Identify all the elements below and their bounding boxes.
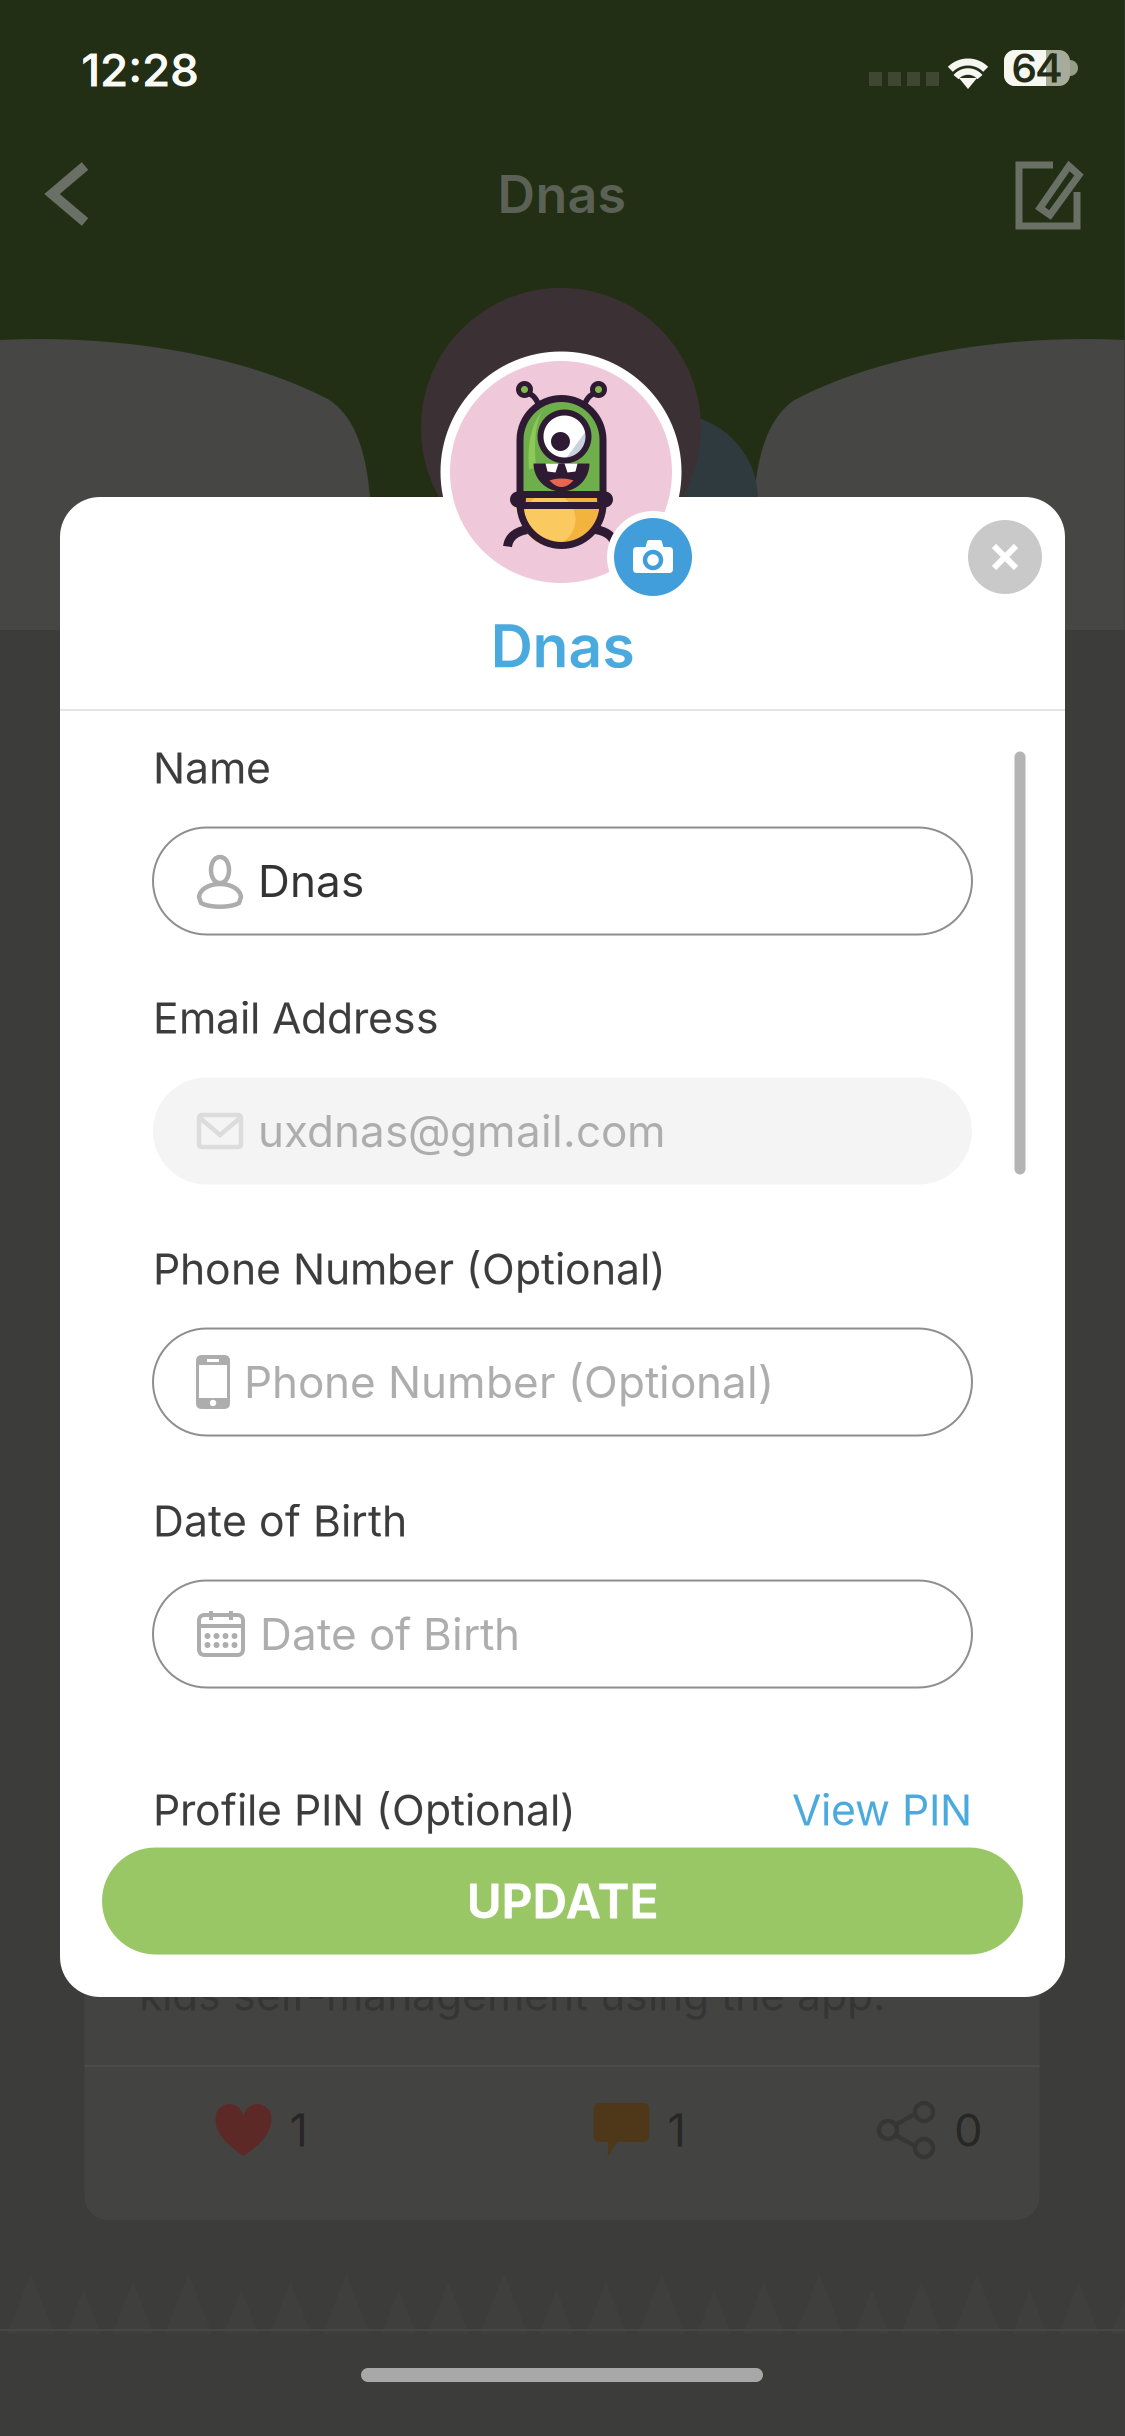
button[interactable]: UPDATE: [102, 1847, 1023, 1954]
staticText: Date of Birth: [153, 1495, 407, 1547]
button[interactable]: Edit: [1015, 160, 1081, 230]
staticText: Date of Birth: [260, 1607, 520, 1661]
staticText: Email Address: [153, 992, 439, 1044]
button[interactable]: 0: [874, 2085, 984, 2175]
staticText: 1: [667, 2103, 685, 2157]
staticText: UPDATE: [466, 1872, 658, 1930]
button[interactable]: View PIN: [792, 1784, 972, 1836]
staticText: kids self-management using the app.: [139, 1969, 885, 2021]
staticText: Profile PIN (Optional): [153, 1784, 576, 1836]
staticText: View PIN: [792, 1784, 972, 1836]
button[interactable]: 1: [208, 2085, 314, 2175]
button[interactable]: Back: [26, 149, 116, 239]
staticText: Dnas: [258, 854, 364, 908]
staticText: Dnas: [497, 162, 626, 225]
button[interactable]: 1: [586, 2085, 692, 2175]
staticText: 1: [289, 2103, 307, 2157]
staticText: 12:28: [81, 43, 199, 97]
staticText: uxdnas@gmail.com: [258, 1104, 666, 1158]
staticText: Phone Number (Optional): [153, 1243, 666, 1295]
staticText: Name: [153, 742, 271, 794]
button[interactable]: Change photo: [607, 511, 699, 603]
staticText: Phone Number (Optional): [244, 1355, 774, 1409]
staticText: Dnas: [490, 610, 634, 681]
button[interactable]: Close: [968, 520, 1042, 594]
staticText: 0: [954, 2103, 983, 2157]
staticText: 64: [1012, 44, 1062, 92]
